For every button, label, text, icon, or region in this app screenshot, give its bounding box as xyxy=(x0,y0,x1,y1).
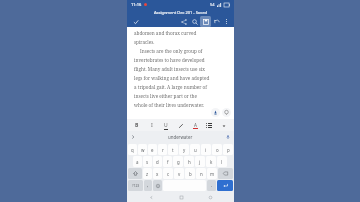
button[interactable]: Highlight xyxy=(175,120,187,131)
staticText: i xyxy=(205,147,207,153)
button[interactable]: j xyxy=(195,156,205,167)
button[interactable]: Symbols xyxy=(128,180,143,191)
button[interactable]: Bold xyxy=(131,120,143,131)
button[interactable]: Recents xyxy=(204,192,216,202)
staticText: flight. Many adult insects use six xyxy=(134,66,205,72)
button[interactable]: More options xyxy=(222,17,231,26)
button[interactable]: Font color xyxy=(189,120,201,131)
staticText: b xyxy=(189,171,192,177)
button[interactable]: r xyxy=(158,144,167,155)
button[interactable]: i xyxy=(201,144,211,155)
button[interactable]: l xyxy=(217,156,227,167)
staticText: z xyxy=(146,171,149,177)
staticText: r xyxy=(162,147,164,153)
staticText: c xyxy=(167,171,170,177)
button[interactable]: Shift xyxy=(128,168,142,179)
button[interactable]: Undo xyxy=(211,16,222,27)
staticText: p xyxy=(227,147,230,153)
staticText: insects live either part or the xyxy=(134,93,197,99)
button[interactable]: s xyxy=(143,156,152,167)
button[interactable]: Underline xyxy=(160,120,172,131)
staticText: B xyxy=(135,122,139,129)
button[interactable]: Back xyxy=(145,192,157,202)
staticText: whole of their lives underwater. xyxy=(134,102,204,108)
button[interactable]: q xyxy=(128,144,137,155)
button[interactable]: u xyxy=(190,144,200,155)
staticText: . xyxy=(211,182,213,189)
button[interactable]: Search xyxy=(189,16,200,27)
staticText: n xyxy=(200,171,203,177)
button[interactable]: h xyxy=(184,156,194,167)
staticText: x xyxy=(156,171,159,177)
staticText: ?123 xyxy=(132,183,140,188)
button[interactable]: f xyxy=(163,156,172,167)
staticText: Assignment Dec 201 - Saved xyxy=(154,10,207,15)
button[interactable]: Save xyxy=(200,16,211,27)
button[interactable]: Italic xyxy=(146,120,158,131)
staticText: s xyxy=(146,159,149,165)
staticText: a xyxy=(136,159,139,165)
button[interactable]: x xyxy=(153,168,162,179)
button[interactable]: Emoji xyxy=(153,180,162,191)
staticText: 11:16 xyxy=(131,2,142,7)
button[interactable]: o xyxy=(212,144,222,155)
staticText: U xyxy=(164,122,168,129)
staticText: Insects are the only group of xyxy=(140,48,203,54)
button[interactable]: Period xyxy=(207,180,216,191)
staticText: m xyxy=(210,171,215,177)
button[interactable]: z xyxy=(143,168,152,179)
staticText: u xyxy=(194,147,197,153)
staticText: e xyxy=(151,147,154,153)
staticText: h xyxy=(188,159,191,165)
staticText: 54 xyxy=(210,2,215,7)
button[interactable]: p xyxy=(223,144,233,155)
button[interactable]: Voice input xyxy=(224,133,232,141)
button[interactable]: Comma xyxy=(144,180,152,191)
button[interactable]: Ink xyxy=(211,108,220,117)
button[interactable]: Backspace xyxy=(218,168,233,179)
button[interactable]: Done xyxy=(130,16,141,27)
button[interactable]: Home xyxy=(175,192,187,202)
staticText: o xyxy=(216,147,219,153)
staticText: k xyxy=(210,159,213,165)
button[interactable]: Bullets xyxy=(203,120,215,131)
button[interactable]: Comments xyxy=(222,108,231,117)
staticText: y xyxy=(183,147,186,153)
button[interactable]: Enter xyxy=(217,180,233,191)
staticText: j xyxy=(199,159,201,165)
button[interactable]: y xyxy=(179,144,189,155)
staticText: legs for walking and have adopted xyxy=(134,75,210,81)
button[interactable]: a xyxy=(133,156,142,167)
button[interactable]: c xyxy=(163,168,173,179)
staticText: I xyxy=(151,122,153,129)
staticText: g xyxy=(177,159,180,165)
button[interactable]: n xyxy=(196,168,206,179)
staticText: q xyxy=(131,147,134,153)
button[interactable]: b xyxy=(185,168,195,179)
button[interactable]: underwater xyxy=(137,131,224,143)
button[interactable]: m xyxy=(207,168,217,179)
staticText: d xyxy=(156,159,159,165)
button[interactable]: v xyxy=(174,168,184,179)
staticText: , xyxy=(147,182,149,189)
staticText: abdomen and thorax curved xyxy=(134,30,197,36)
staticText: A xyxy=(194,122,197,128)
staticText: spiracles. xyxy=(134,39,155,45)
staticText: invertebrates to have developed xyxy=(134,57,205,63)
button[interactable]: t xyxy=(168,144,178,155)
button[interactable]: g xyxy=(173,156,183,167)
staticText: a tripodal gait. A large number of xyxy=(134,84,207,90)
staticText: v xyxy=(178,171,181,177)
button[interactable]: w xyxy=(138,144,147,155)
button[interactable]: Share xyxy=(178,16,189,27)
button[interactable]: d xyxy=(153,156,162,167)
staticText: l xyxy=(221,159,223,165)
staticText: underwater xyxy=(168,134,193,140)
button[interactable]: e xyxy=(148,144,157,155)
button[interactable]: More suggestions xyxy=(129,133,137,141)
staticText: t xyxy=(172,147,174,153)
button[interactable]: More formatting xyxy=(218,120,230,131)
button[interactable]: k xyxy=(206,156,216,167)
staticText: w xyxy=(141,147,145,153)
